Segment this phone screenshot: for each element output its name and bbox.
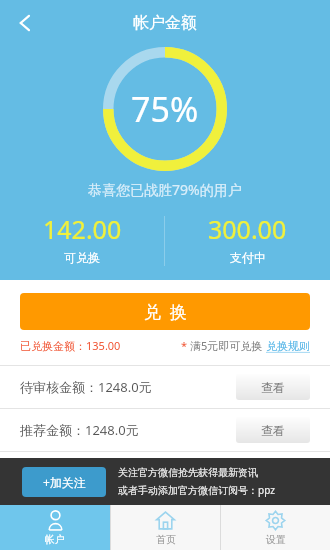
staticText: +加关注 (43, 474, 86, 490)
staticText: 142.00 (43, 212, 122, 246)
button[interactable]: Back (4, 2, 46, 44)
staticText: 可兑换 (64, 250, 100, 265)
staticText: 帐户金额 (133, 13, 197, 33)
staticText: 关注官方微信抢先获得最新资讯 (118, 466, 258, 479)
button[interactable]: 兑 换 (20, 293, 310, 330)
staticText: 推荐金额：1248.0元 (20, 421, 139, 439)
button[interactable]: 查看 (236, 374, 310, 400)
staticText: 待审核金额：1248.0元 (20, 378, 152, 396)
button[interactable]: 查看 (236, 417, 310, 443)
staticText: 设置 (266, 533, 286, 546)
button[interactable]: 推荐金额：1248.0元 (0, 409, 330, 451)
staticText: 查看 (261, 423, 285, 438)
staticText: 已兑换金额：135.00 (20, 338, 121, 353)
staticText: 兑换规则 (266, 339, 310, 353)
staticText: * (181, 338, 190, 353)
staticText: 或者手动添加官方微信订阅号：ppz (118, 483, 275, 497)
button[interactable]: 待审核金额：1248.0元 (0, 366, 330, 408)
staticText: 兑 换 (144, 300, 187, 323)
staticText: 支付中 (230, 250, 266, 265)
staticText: 恭喜您已战胜79%的用户 (88, 180, 242, 199)
button[interactable]: 首页 (111, 505, 220, 550)
staticText: 首页 (156, 533, 176, 546)
button[interactable]: 设置 (221, 505, 330, 550)
staticText: 75% (131, 86, 199, 132)
button[interactable]: 帐户 (0, 505, 110, 550)
staticText: 300.00 (208, 212, 287, 246)
staticText: 帐户 (45, 533, 65, 546)
staticText: 查看 (261, 380, 285, 395)
button[interactable]: +加关注 (22, 467, 106, 497)
button[interactable]: 兑换规则 (266, 339, 310, 353)
staticText: 满5元即可兑换 (190, 338, 266, 353)
